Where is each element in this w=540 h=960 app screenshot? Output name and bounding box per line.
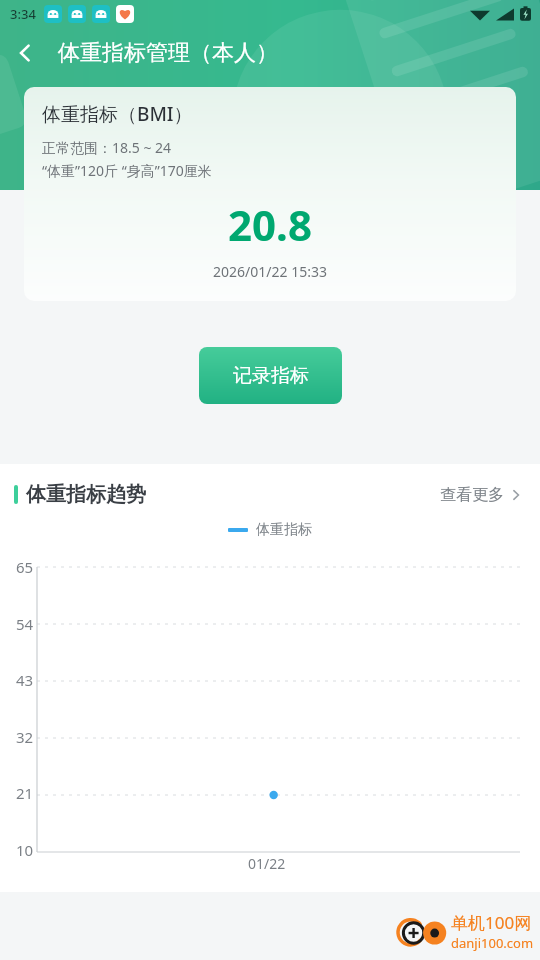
staticText: 32	[16, 727, 34, 747]
staticText: 体重指标趋势	[26, 482, 146, 507]
staticText: 10	[16, 840, 34, 860]
staticText: 21	[16, 783, 34, 803]
staticText: “体重”120斤 “身高”170厘米	[42, 161, 212, 180]
staticText: 54	[16, 614, 34, 634]
staticText: 体重指标	[256, 521, 312, 539]
button[interactable]: 查看更多	[440, 485, 522, 505]
staticText: 查看更多	[440, 485, 504, 505]
staticText: 体重指标（BMI）	[42, 101, 193, 127]
staticText: 单机100网	[451, 911, 532, 934]
button[interactable]: Back	[0, 28, 50, 78]
staticText: 20.8	[42, 196, 498, 253]
staticText: 正常范围：18.5 ~ 24	[42, 138, 172, 157]
staticText: 65	[16, 557, 34, 577]
staticText: 记录指标	[233, 364, 309, 388]
staticText: 43	[16, 670, 34, 690]
staticText: 01/22	[248, 854, 286, 873]
staticText: 2026/01/22 15:33	[42, 262, 498, 281]
staticText: 体重指标管理（本人）	[58, 39, 278, 67]
button[interactable]: 记录指标	[199, 347, 342, 404]
staticText: 3:34	[10, 5, 36, 23]
button[interactable]: 体重指标（BMI）	[24, 87, 516, 301]
staticText: danji100.com	[451, 934, 534, 952]
